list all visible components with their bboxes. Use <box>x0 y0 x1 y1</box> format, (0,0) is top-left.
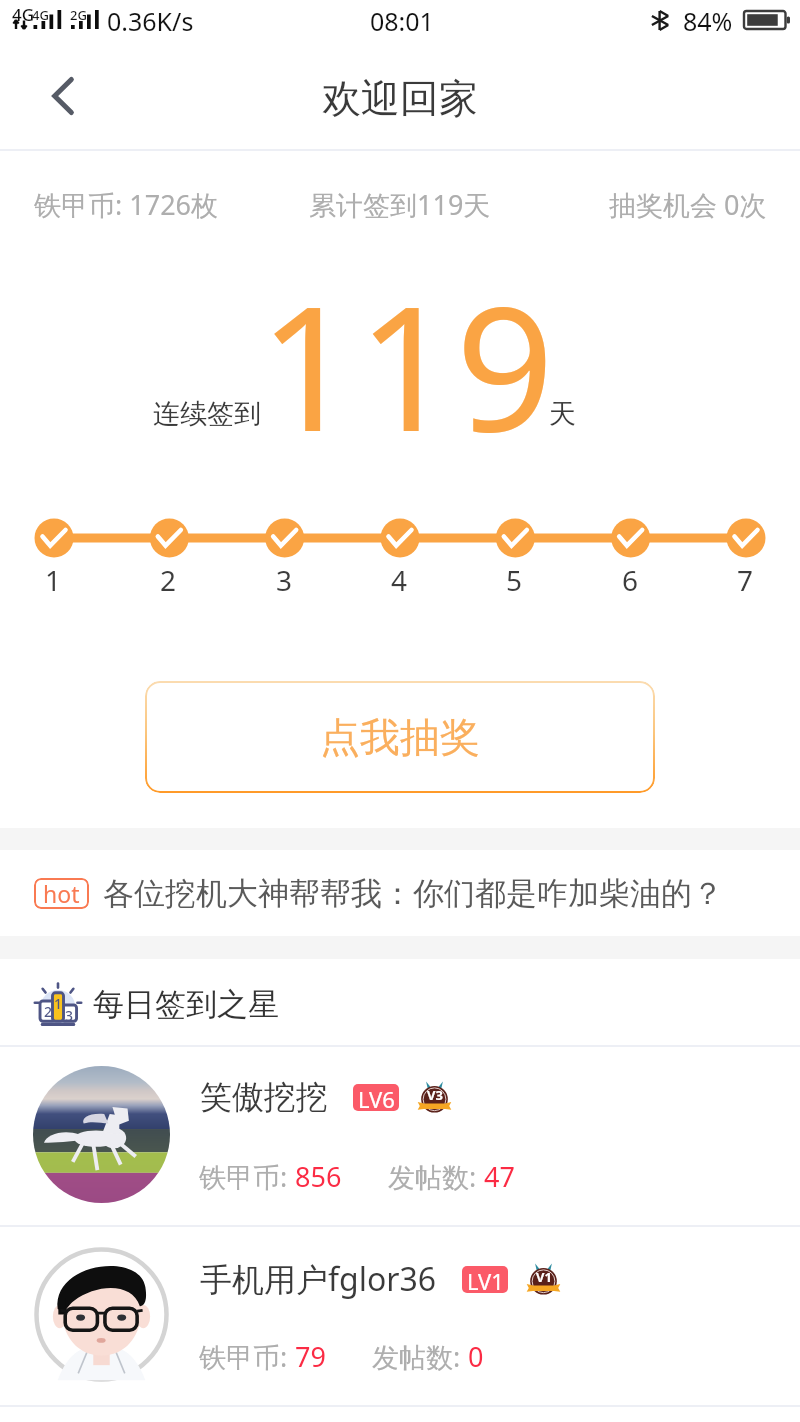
staticText: 发帖数: <box>388 1158 484 1195</box>
staticText: 发帖数: <box>372 1338 468 1375</box>
staticText: 2 <box>44 1002 53 1021</box>
staticText: 1 <box>45 561 62 599</box>
staticText: LV6 <box>358 1084 395 1111</box>
staticText: 2 <box>160 561 177 599</box>
staticText: 0.36K/s <box>107 4 194 38</box>
staticText: hot <box>43 878 80 909</box>
staticText: 119 <box>259 247 555 481</box>
staticText: 铁甲币: <box>199 1338 295 1375</box>
staticText: 0 <box>468 1338 484 1375</box>
staticText: 天 <box>549 397 576 431</box>
staticText: 抽奖机会 0次 <box>609 186 767 223</box>
staticText: 连续签到 <box>153 397 261 431</box>
staticText: 欢迎回家 <box>322 74 478 123</box>
staticText: 铁甲币: <box>199 1158 295 1195</box>
staticText: 2G <box>70 6 87 24</box>
staticText: 各位挖机大神帮帮我：你们都是咋加柴油的？ <box>103 874 723 913</box>
staticText: 3 <box>276 561 293 599</box>
staticText: 84% <box>683 4 733 38</box>
staticText: 6 <box>622 561 639 599</box>
staticText: 1 <box>54 994 63 1013</box>
staticText: 累计签到119天 <box>309 186 491 223</box>
staticText: 08:01 <box>370 4 434 38</box>
staticText: 每日签到之星 <box>93 985 279 1024</box>
staticText: 5 <box>506 561 523 599</box>
button[interactable]: 笑傲挖挖 <box>0 1046 800 1226</box>
staticText: 856 <box>295 1158 342 1195</box>
staticText: V1 <box>536 1268 552 1286</box>
staticText: 手机用户fglor36 <box>200 1257 437 1301</box>
staticText: 铁甲币: 1726枚 <box>34 186 219 223</box>
staticText: 点我抽奖 <box>320 712 480 762</box>
button[interactable]: 点我抽奖 <box>145 681 655 793</box>
staticText: 47 <box>484 1158 515 1195</box>
staticText: LV1 <box>467 1266 504 1293</box>
staticText: 79 <box>295 1338 326 1375</box>
staticText: 7 <box>737 561 754 599</box>
staticText: 笑傲挖挖 <box>200 1077 328 1117</box>
staticText: 4G <box>12 3 35 26</box>
staticText: V3 <box>427 1086 443 1104</box>
staticText: 4 <box>391 561 408 599</box>
button[interactable]: 手机用户fglor36 <box>0 1226 800 1406</box>
button[interactable]: hot <box>0 850 800 936</box>
button[interactable]: Back <box>0 48 120 148</box>
staticText: 3 <box>65 1006 74 1025</box>
staticText: 4G <box>32 6 49 24</box>
